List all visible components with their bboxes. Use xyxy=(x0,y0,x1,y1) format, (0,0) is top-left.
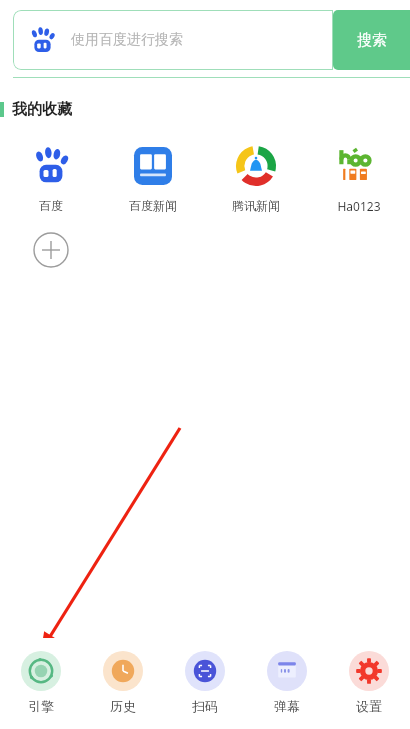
button[interactable]: Add bookmark xyxy=(33,232,69,268)
staticText: 使用百度进行搜索 xyxy=(71,31,183,49)
button[interactable]: History xyxy=(82,651,164,714)
staticText: 扫码 xyxy=(192,698,218,714)
button[interactable]: 腾讯新闻 xyxy=(204,143,307,213)
button[interactable]: 百度 xyxy=(0,143,102,213)
staticText: 我的收藏 xyxy=(12,100,72,119)
button[interactable]: Scan code xyxy=(164,651,246,714)
button[interactable]: 百度新闻 xyxy=(102,143,204,213)
button[interactable]: Danmaku xyxy=(246,651,328,714)
staticText: 弹幕 xyxy=(274,698,300,714)
button[interactable]: Ha0123 xyxy=(307,143,410,214)
staticText: 腾讯新闻 xyxy=(232,198,280,213)
button[interactable]: Settings xyxy=(328,651,410,714)
staticText: 历史 xyxy=(110,698,136,714)
button[interactable]: 使用百度进行搜索 xyxy=(13,10,333,70)
staticText: 引擎 xyxy=(28,698,54,714)
staticText: Ha0123 xyxy=(337,198,381,214)
button[interactable]: 搜索 xyxy=(333,10,410,70)
staticText: 百度 xyxy=(39,198,63,213)
staticText: 百度新闻 xyxy=(129,198,177,213)
button[interactable]: Engine xyxy=(0,651,82,714)
staticText: 搜索 xyxy=(357,31,387,50)
staticText: 设置 xyxy=(356,698,382,714)
